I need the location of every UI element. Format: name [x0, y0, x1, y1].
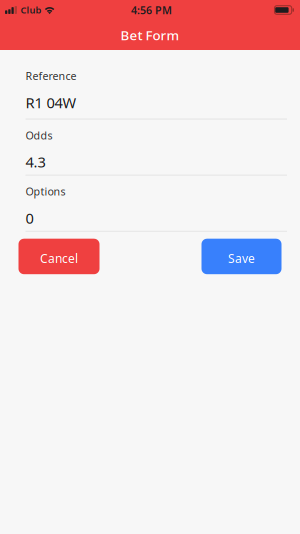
- staticText: Club: [20, 4, 41, 16]
- staticText: R1 04W: [25, 93, 76, 112]
- staticText: 0: [25, 208, 33, 228]
- staticText: Reference: [25, 69, 76, 83]
- staticText: Bet Form: [120, 26, 179, 44]
- staticText: Options: [25, 184, 65, 199]
- staticText: Cancel: [40, 250, 78, 266]
- button[interactable]: Cancel: [18, 239, 99, 274]
- staticText: 4.3: [25, 152, 45, 172]
- staticText: Save: [228, 250, 255, 266]
- staticText: Odds: [25, 128, 52, 142]
- button[interactable]: Save: [201, 239, 281, 274]
- staticText: 4:56 PM: [131, 3, 172, 17]
